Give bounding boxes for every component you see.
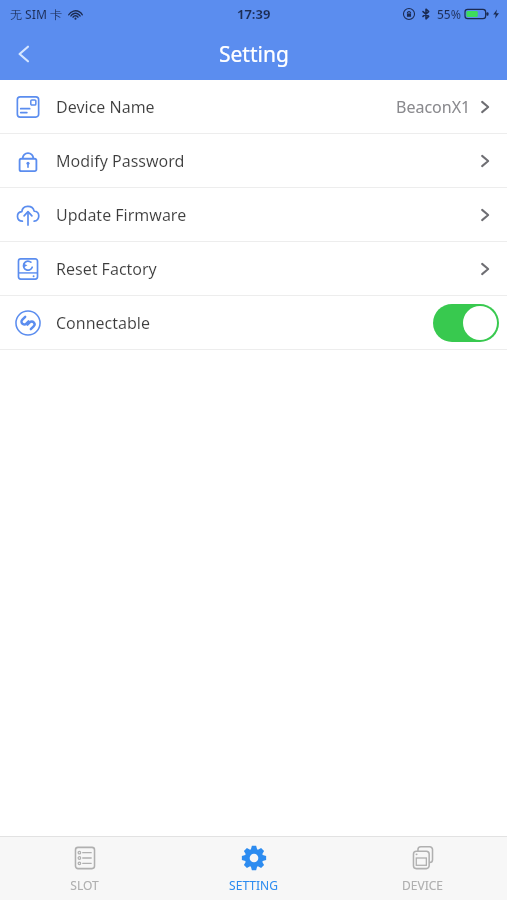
staticText: SLOT <box>70 877 99 893</box>
button[interactable]: Connectable <box>0 296 507 349</box>
button[interactable]: SETTING <box>169 837 338 900</box>
staticText: 55% <box>437 6 461 22</box>
button[interactable]: Back <box>0 30 48 78</box>
button[interactable]: Device Name <box>0 80 507 133</box>
staticText: Update Firmware <box>56 204 187 226</box>
button[interactable]: DEVICE <box>338 837 507 900</box>
staticText: DEVICE <box>402 877 443 893</box>
staticText: Setting <box>219 40 289 69</box>
staticText: 17:39 <box>237 5 271 23</box>
staticText: SETTING <box>229 877 278 893</box>
button[interactable]: Modify Password <box>0 134 507 187</box>
staticText: Connectable <box>56 312 151 334</box>
staticText: BeaconX1 <box>396 96 471 118</box>
button[interactable]: Connectable toggle <box>433 304 499 342</box>
staticText: Device Name <box>56 96 155 118</box>
button[interactable]: Reset Factory <box>0 242 507 295</box>
staticText: 无 SIM 卡 <box>10 6 63 22</box>
staticText: Modify Password <box>56 150 185 172</box>
button[interactable]: SLOT <box>0 837 169 900</box>
staticText: Reset Factory <box>56 258 157 280</box>
button[interactable]: Update Firmware <box>0 188 507 241</box>
